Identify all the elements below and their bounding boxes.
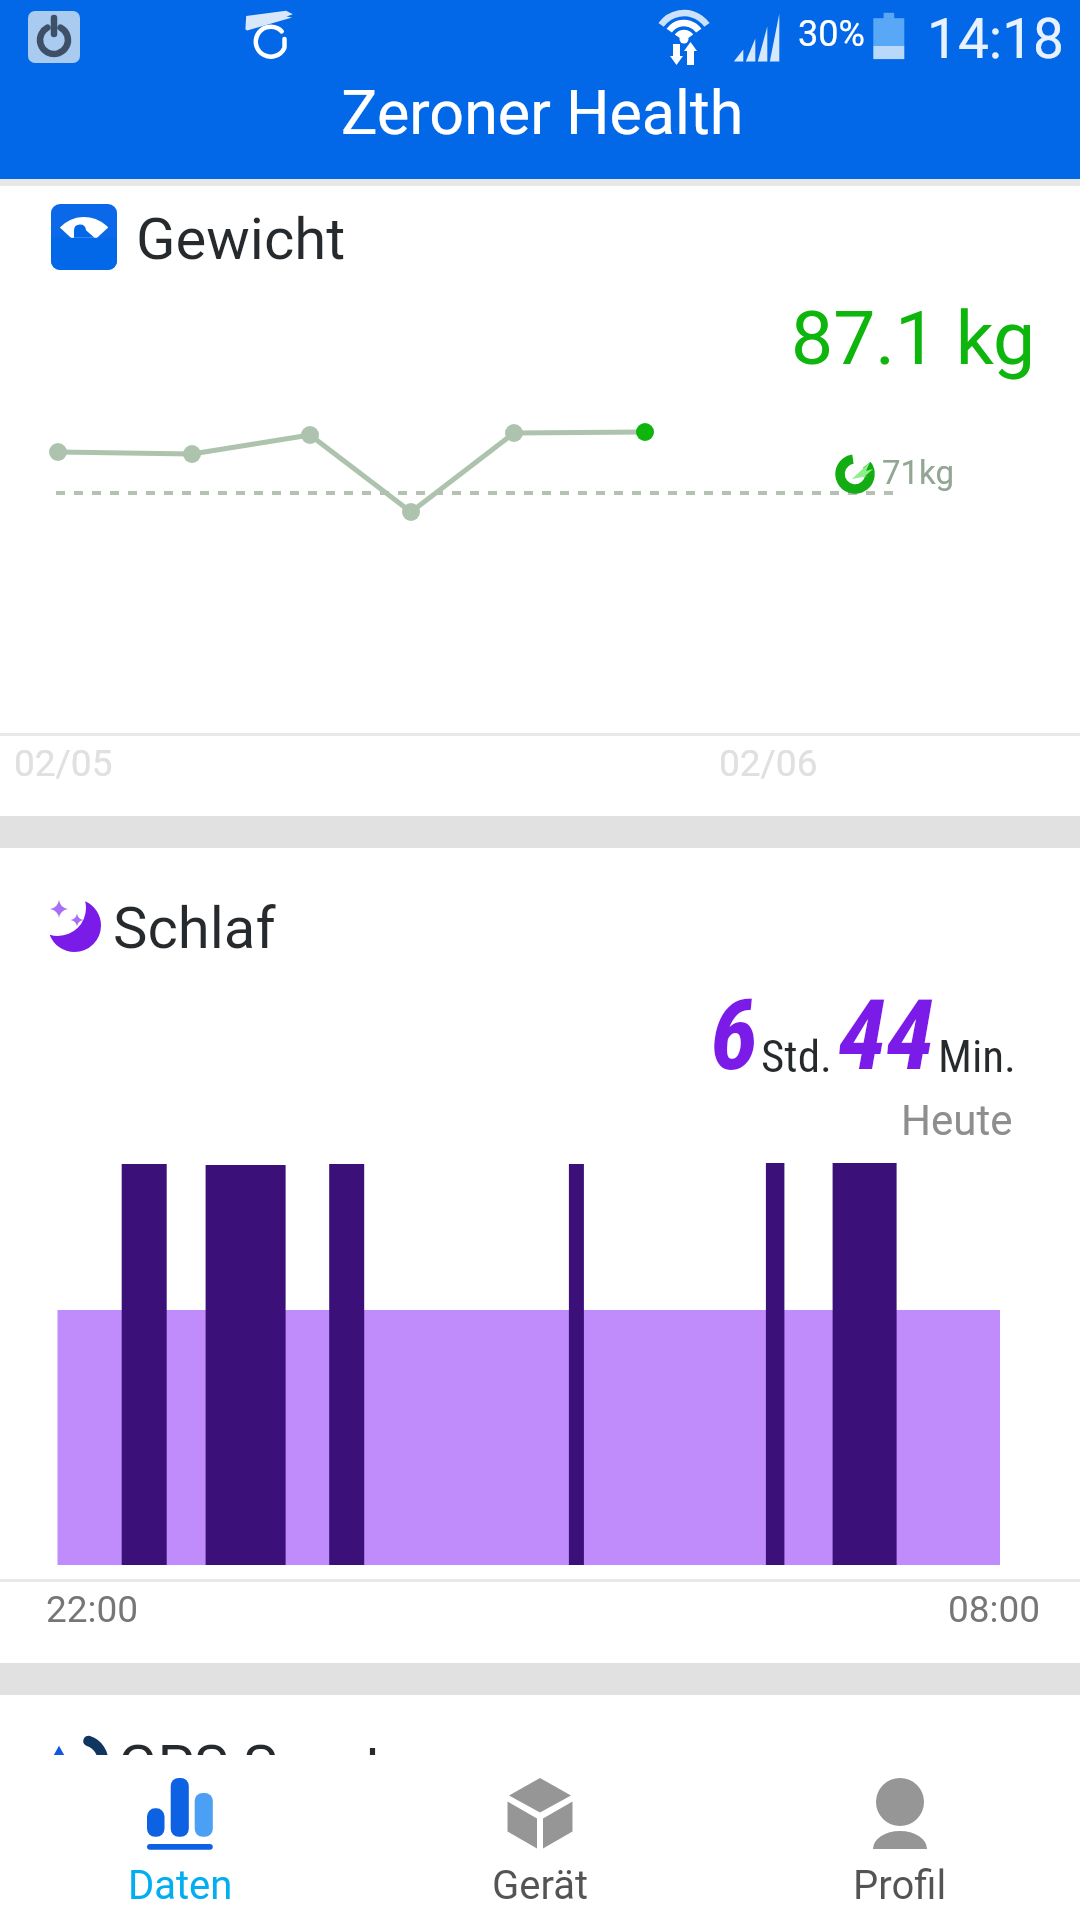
button[interactable]: Gewicht (0, 186, 1080, 816)
staticText: Schlaf (113, 894, 276, 962)
staticText: 87.1 kg (791, 294, 1036, 382)
staticText: 22:00 (46, 1588, 139, 1631)
button[interactable]: Zeroner sync status (242, 6, 298, 64)
button[interactable]: GPS Sport (0, 1695, 1080, 1755)
staticText: Gerät (492, 1862, 589, 1909)
staticText: 14:18 (927, 7, 1064, 71)
staticText: 44 (838, 978, 935, 1093)
staticText: Gewicht (136, 205, 346, 273)
button[interactable]: Power (28, 11, 80, 63)
staticText: Profil (853, 1862, 947, 1909)
staticText: Min. (938, 1030, 1016, 1083)
staticText: 71kg (882, 453, 955, 492)
staticText: Heute (901, 1096, 1013, 1145)
staticText: Daten (128, 1862, 233, 1909)
staticText: GPS Sport (118, 1732, 384, 1792)
button[interactable]: Schlaf (0, 848, 1080, 1663)
staticText: 02/05 (14, 742, 113, 785)
staticText: Zeroner Health (341, 77, 744, 148)
staticText: 02/06 (719, 742, 818, 785)
button[interactable]: Gerät (360, 1755, 720, 1920)
staticText: Std. (761, 1030, 832, 1083)
button[interactable]: Daten (0, 1755, 360, 1920)
staticText: 6 (710, 978, 759, 1093)
button[interactable]: Profil (720, 1755, 1080, 1920)
staticText: 30% (798, 13, 865, 55)
staticText: 08:00 (948, 1588, 1041, 1631)
